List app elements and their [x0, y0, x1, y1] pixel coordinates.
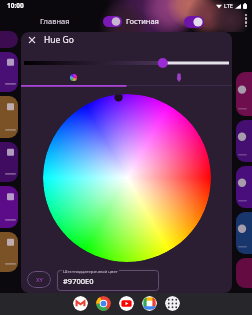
button[interactable]: Photos	[142, 296, 157, 311]
button[interactable]: More options	[240, 12, 252, 24]
staticText: Hue Go	[44, 34, 74, 46]
button[interactable]: Гостиная	[126, 14, 206, 28]
staticText: #9700E0	[63, 276, 94, 286]
button[interactable]: Brightness	[21, 56, 232, 70]
staticText: Главная	[40, 16, 70, 26]
staticText: 10:00	[7, 1, 24, 10]
button[interactable]: Colour wheel	[43, 94, 211, 262]
staticText: XY	[36, 276, 43, 284]
button[interactable]: Gmail	[73, 296, 88, 311]
button[interactable]: YouTube	[119, 296, 134, 311]
staticText: LTE	[224, 2, 233, 9]
staticText: Гостиная	[126, 16, 159, 26]
button[interactable]: Hexadecimal colour	[57, 270, 159, 291]
button[interactable]: White temperature tab	[126, 70, 232, 84]
button[interactable]: All apps	[165, 296, 180, 311]
button[interactable]: XY	[27, 271, 51, 288]
staticText: Шестнадцатеричный цвет	[63, 268, 118, 274]
button[interactable]: Главная	[40, 14, 124, 28]
button[interactable]: Chrome	[96, 296, 111, 311]
button[interactable]: Close	[24, 32, 40, 48]
button[interactable]: Color tab	[21, 70, 126, 84]
